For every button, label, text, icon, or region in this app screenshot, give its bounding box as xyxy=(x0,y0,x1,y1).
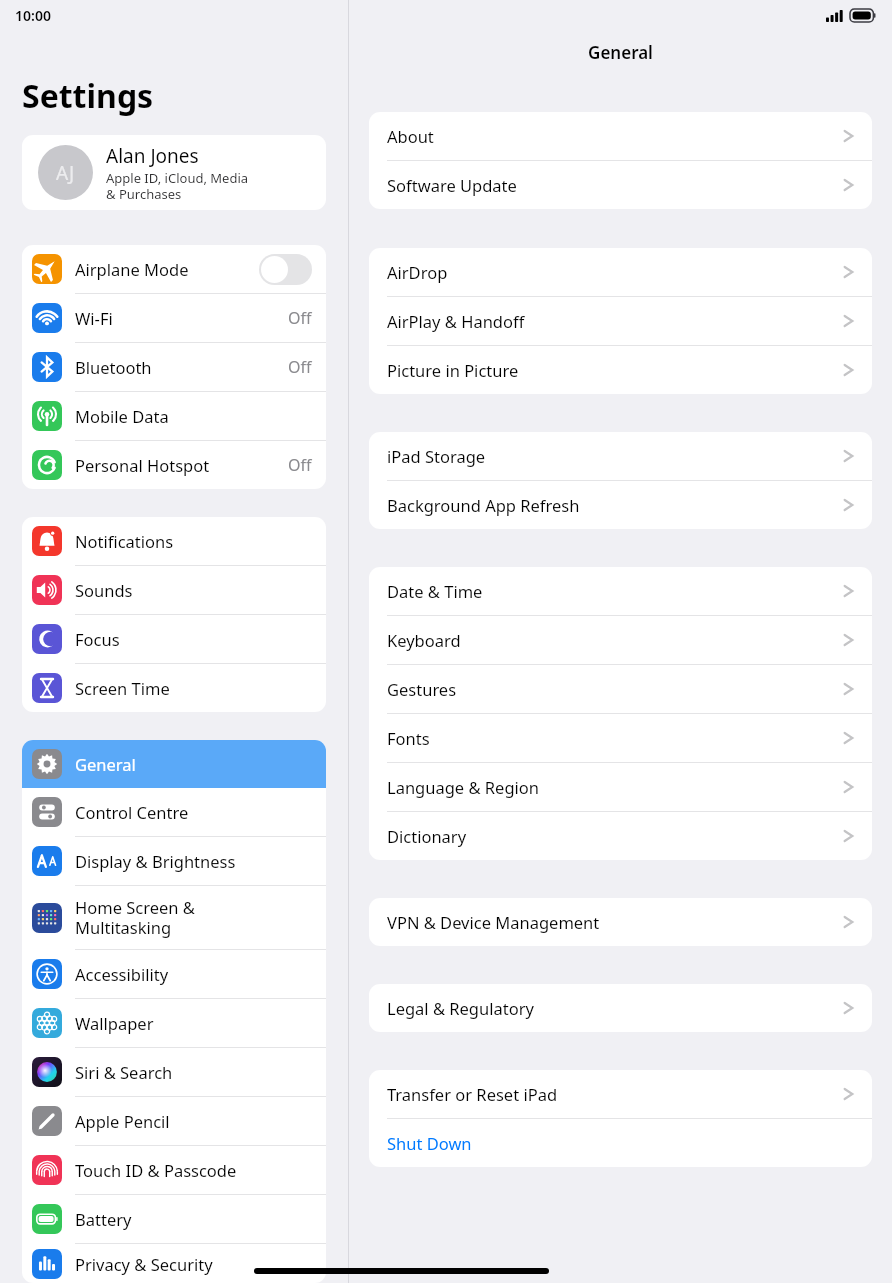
button[interactable]: Privacy & Security xyxy=(22,1244,326,1283)
button[interactable]: Battery xyxy=(22,1195,326,1243)
staticText: Picture in Picture xyxy=(387,359,843,381)
staticText: Display & Brightness xyxy=(75,850,236,872)
button[interactable]: Date & Time xyxy=(369,567,872,615)
staticText: Wallpaper xyxy=(75,1012,154,1034)
staticText: Apple ID, iCloud, Media & Purchases xyxy=(106,169,249,202)
staticText: Siri & Search xyxy=(75,1061,173,1083)
staticText: Control Centre xyxy=(75,801,189,823)
button[interactable]: Keyboard xyxy=(369,616,872,664)
staticText: Privacy & Security xyxy=(75,1253,213,1275)
button[interactable]: General xyxy=(22,740,326,788)
staticText: Legal & Regulatory xyxy=(387,997,843,1019)
button[interactable]: Gestures xyxy=(369,665,872,713)
staticText: Screen Time xyxy=(75,677,170,699)
button[interactable]: Apple Pencil xyxy=(22,1097,326,1145)
button[interactable]: Airplane Mode xyxy=(22,245,326,293)
staticText: Airplane Mode xyxy=(75,258,189,280)
staticText: Sounds xyxy=(75,579,133,601)
button[interactable]: Accessibility xyxy=(22,950,326,998)
button[interactable]: Transfer or Reset iPad xyxy=(369,1070,872,1118)
button[interactable]: AirDrop xyxy=(369,248,872,296)
button[interactable]: Airplane Mode toggle xyxy=(259,254,312,285)
button[interactable]: Focus xyxy=(22,615,326,663)
staticText: Personal Hotspot xyxy=(75,454,210,476)
staticText: AirDrop xyxy=(387,261,843,283)
button[interactable]: Shut Down xyxy=(369,1119,872,1167)
button[interactable]: About xyxy=(369,112,872,160)
staticText: iPad Storage xyxy=(387,445,843,467)
staticText: Bluetooth xyxy=(75,356,152,378)
button[interactable]: Dictionary xyxy=(369,812,872,860)
button[interactable]: Background App Refresh xyxy=(369,481,872,529)
button[interactable]: Bluetooth xyxy=(22,343,326,391)
staticText: Fonts xyxy=(387,727,843,749)
staticText: 10:00 xyxy=(15,6,51,25)
button[interactable]: Touch ID & Passcode xyxy=(22,1146,326,1194)
button[interactable]: Notifications xyxy=(22,517,326,565)
button[interactable]: iPad Storage xyxy=(369,432,872,480)
button[interactable]: Picture in Picture xyxy=(369,346,872,394)
button[interactable]: AirPlay & Handoff xyxy=(369,297,872,345)
staticText: AirPlay & Handoff xyxy=(387,310,843,332)
staticText: Settings xyxy=(22,74,154,118)
button[interactable]: Legal & Regulatory xyxy=(369,984,872,1032)
button[interactable]: Wallpaper xyxy=(22,999,326,1047)
staticText: Date & Time xyxy=(387,580,843,602)
button[interactable]: Screen Time xyxy=(22,664,326,712)
staticText: Mobile Data xyxy=(75,405,169,427)
staticText: Background App Refresh xyxy=(387,494,843,516)
staticText: VPN & Device Management xyxy=(387,911,843,933)
staticText: About xyxy=(387,125,843,147)
button[interactable]: Sounds xyxy=(22,566,326,614)
button[interactable]: Personal Hotspot xyxy=(22,441,326,489)
button[interactable]: Language & Region xyxy=(369,763,872,811)
button[interactable]: AJ xyxy=(22,135,326,210)
staticText: Home Screen & Multitasking xyxy=(75,896,195,939)
staticText: AJ xyxy=(56,160,75,186)
staticText: Alan Jones xyxy=(106,143,199,169)
staticText: Wi-Fi xyxy=(75,307,113,329)
button[interactable]: Fonts xyxy=(369,714,872,762)
staticText: Language & Region xyxy=(387,776,843,798)
button[interactable]: Software Update xyxy=(369,161,872,209)
staticText: Off xyxy=(288,307,312,329)
button[interactable]: Display & Brightness xyxy=(22,837,326,885)
staticText: Notifications xyxy=(75,530,174,552)
button[interactable]: Control Centre xyxy=(22,788,326,836)
staticText: Transfer or Reset iPad xyxy=(387,1083,843,1105)
staticText: Dictionary xyxy=(387,825,843,847)
staticText: Focus xyxy=(75,628,120,650)
staticText: General xyxy=(349,41,892,64)
staticText: General xyxy=(75,753,136,775)
staticText: Battery xyxy=(75,1208,132,1230)
staticText: Gestures xyxy=(387,678,843,700)
staticText: Off xyxy=(288,356,312,378)
button[interactable]: Wi-Fi xyxy=(22,294,326,342)
staticText: Shut Down xyxy=(387,1132,854,1154)
staticText: Accessibility xyxy=(75,963,169,985)
button[interactable]: Home Screen & Multitasking xyxy=(22,886,326,949)
button[interactable]: Mobile Data xyxy=(22,392,326,440)
staticText: Apple Pencil xyxy=(75,1110,170,1132)
staticText: Off xyxy=(288,454,312,476)
staticText: Touch ID & Passcode xyxy=(75,1159,237,1181)
button[interactable]: Siri & Search xyxy=(22,1048,326,1096)
staticText: Keyboard xyxy=(387,629,843,651)
staticText: Software Update xyxy=(387,174,843,196)
button[interactable]: VPN & Device Management xyxy=(369,898,872,946)
